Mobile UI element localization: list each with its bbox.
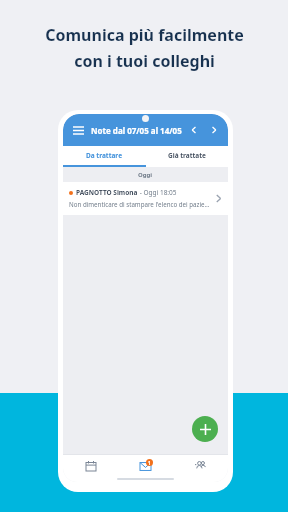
button[interactable]: Messages, 1 unread xyxy=(118,455,173,476)
button[interactable]: Previous xyxy=(187,123,201,137)
button[interactable]: Next xyxy=(207,123,221,137)
staticText: Non dimenticare di stampare l'elenco dei… xyxy=(69,200,212,208)
button[interactable]: PAGNOTTO Simona xyxy=(63,182,228,215)
staticText: 1 xyxy=(148,460,151,466)
staticText: Già trattate xyxy=(168,151,206,160)
button[interactable]: Calendar xyxy=(63,455,118,476)
staticText: con i tuoi colleghi xyxy=(74,50,215,72)
button[interactable]: Da trattare xyxy=(63,146,145,165)
staticText: Note dal 07/05 al 14/05 xyxy=(91,125,182,136)
staticText: Oggi xyxy=(138,171,153,179)
staticText: Comunica più facilmente xyxy=(45,24,244,46)
staticText: PAGNOTTO Simona xyxy=(76,188,138,197)
staticText: Da trattare xyxy=(86,151,123,160)
button[interactable]: Add note xyxy=(192,416,218,442)
button[interactable]: Menu xyxy=(70,122,86,138)
button[interactable]: Già trattate xyxy=(145,146,228,165)
button[interactable]: Contacts xyxy=(173,455,228,476)
staticText: - Oggi 18:05 xyxy=(138,188,177,197)
